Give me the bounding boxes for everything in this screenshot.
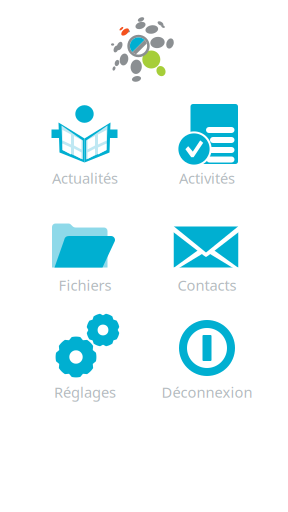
- staticText: Activités: [179, 168, 235, 188]
- button[interactable]: Fichiers: [24, 206, 146, 313]
- staticText: Contacts: [177, 275, 236, 295]
- button[interactable]: Actualités: [24, 99, 146, 206]
- button[interactable]: Déconnexion: [146, 313, 268, 420]
- staticText: Déconnexion: [161, 382, 252, 402]
- staticText: Réglages: [54, 382, 116, 402]
- button[interactable]: Réglages: [24, 313, 146, 420]
- staticText: Fichiers: [58, 275, 111, 295]
- button[interactable]: Activités: [146, 99, 268, 206]
- staticText: Actualités: [52, 168, 118, 188]
- button[interactable]: Contacts: [146, 206, 268, 313]
